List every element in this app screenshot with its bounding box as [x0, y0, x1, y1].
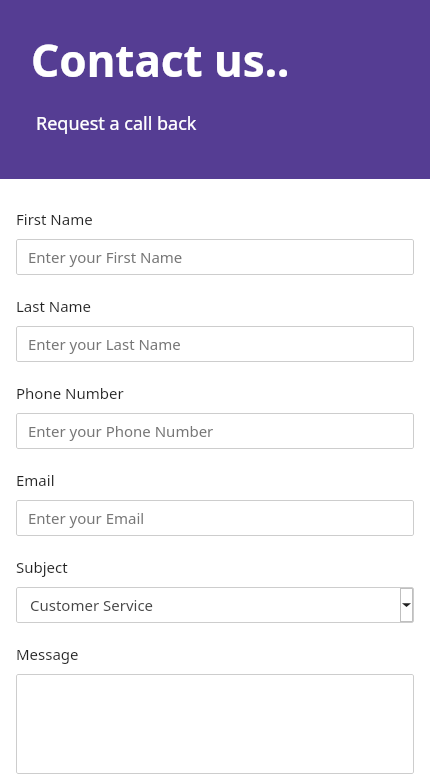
staticText: Last Name [16, 296, 92, 316]
button[interactable] [16, 674, 414, 774]
staticText: Message [16, 644, 79, 664]
staticText: Enter your Phone Number [28, 421, 214, 441]
staticText: Subject [16, 557, 68, 577]
staticText: Enter your First Name [28, 247, 183, 267]
button[interactable]: Open subject dropdown [400, 588, 413, 622]
staticText: Phone Number [16, 383, 124, 403]
staticText: Customer Service [30, 595, 154, 615]
button[interactable]: Enter your Phone Number [16, 413, 414, 449]
staticText: Contact us.. [31, 30, 290, 90]
button[interactable]: Customer Service [16, 587, 414, 623]
staticText: Enter your Email [28, 508, 145, 528]
staticText: Email [16, 470, 55, 490]
button[interactable]: Enter your First Name [16, 239, 414, 275]
staticText: Request a call back [36, 111, 197, 136]
button[interactable]: Enter your Last Name [16, 326, 414, 362]
button[interactable]: Enter your Email [16, 500, 414, 536]
staticText: First Name [16, 209, 93, 229]
staticText: Enter your Last Name [28, 334, 181, 354]
